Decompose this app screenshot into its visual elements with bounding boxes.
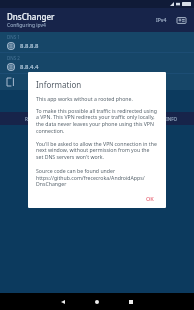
staticText: This app works without a rooted phone.: [36, 95, 133, 102]
button[interactable]: RATE: [0, 112, 60, 125]
button[interactable]: START: [0, 96, 194, 108]
staticText: You'll be asked to allow the VPN connect…: [36, 140, 158, 161]
button[interactable]: Default DNS Addresses: [0, 74, 194, 90]
staticText: 8.8.8.8: [20, 42, 39, 50]
staticText: To make this possible all traffic is red…: [36, 107, 158, 135]
button[interactable]: Home: [86, 293, 108, 310]
button[interactable]: DNS 2: [0, 53, 194, 74]
staticText: START: [88, 98, 106, 106]
staticText: Information: [36, 79, 82, 90]
button[interactable]: Back: [52, 293, 74, 310]
staticText: DnsChanger: [7, 11, 55, 22]
staticText: OK: [146, 195, 154, 202]
staticText: Source code can be found under: [36, 167, 116, 174]
staticText: RATE: [25, 116, 36, 122]
button[interactable]: Home: [60, 112, 121, 125]
staticText: DNS 1: [7, 34, 20, 40]
button[interactable]: IPv4: [153, 14, 170, 27]
staticText: Default DNS Addresses: [71, 79, 131, 86]
staticText: IPv4: [156, 17, 167, 24]
staticText: Configuring ipv4: [7, 22, 46, 29]
button[interactable]: Contact: [174, 13, 189, 28]
staticText: MORE APPS / INFO: [137, 116, 178, 122]
button[interactable]: DNS 1: [0, 32, 194, 53]
staticText: 8.8.4.4: [20, 63, 39, 71]
staticText: DNS 2: [7, 55, 20, 61]
button[interactable]: OK: [142, 193, 158, 204]
staticText: https://github.com/frececroka/AndroidApp…: [36, 174, 158, 188]
button[interactable]: Recents: [120, 293, 142, 310]
button[interactable]: MORE APPS / INFO: [121, 112, 194, 125]
